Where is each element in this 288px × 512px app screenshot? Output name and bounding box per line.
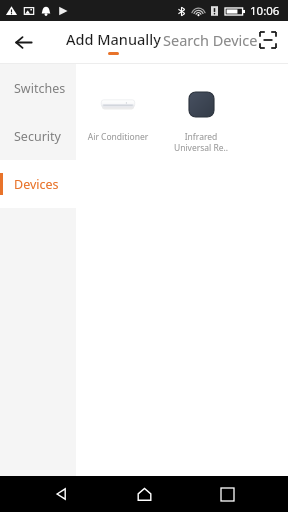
button[interactable]: Devices xyxy=(0,160,76,208)
staticText: Security xyxy=(14,128,61,145)
staticText: Switches xyxy=(14,80,66,97)
button[interactable]: Add Manually xyxy=(66,29,161,55)
button[interactable]: Security xyxy=(0,112,76,160)
button[interactable]: Scan QR code xyxy=(253,25,283,55)
button[interactable]: Back xyxy=(6,25,40,59)
staticText: Add Manually xyxy=(66,29,161,49)
staticText: Air Conditioner xyxy=(82,131,154,143)
button[interactable]: Recent apps xyxy=(205,476,249,512)
button[interactable]: Infrared Universal Re.. xyxy=(162,82,240,155)
staticText: Search Device xyxy=(163,30,258,50)
button[interactable]: Air Conditioner xyxy=(82,82,154,145)
staticText: Devices xyxy=(14,176,59,193)
button[interactable]: Home xyxy=(122,476,166,512)
staticText: Infrared Universal Re.. xyxy=(162,131,240,153)
button[interactable]: Switches xyxy=(0,64,76,112)
staticText: 10:06 xyxy=(250,3,280,19)
button[interactable]: Search Device xyxy=(163,30,258,50)
button[interactable]: Back xyxy=(39,476,83,512)
